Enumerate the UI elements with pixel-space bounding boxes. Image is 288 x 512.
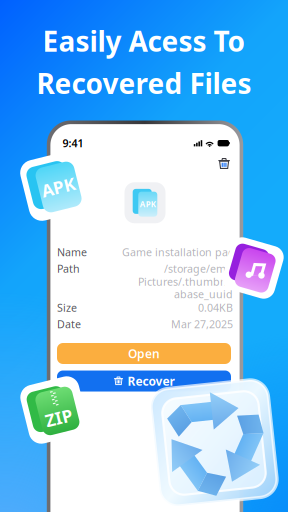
staticText: Pictures/.thumbna [138,274,233,289]
staticText: Recover [127,373,174,389]
staticText: 0.04KB [198,300,233,315]
button[interactable]: Delete [215,154,234,173]
staticText: Game installation pac [122,245,233,259]
staticText: Recovered Files [36,64,251,102]
staticText: Date [57,317,81,331]
staticText: abase_uuid [174,287,233,301]
staticText: Easily Acess To [42,22,245,59]
staticText: ZIP [43,407,71,430]
staticText: Name [57,245,87,259]
staticText: Open [128,345,160,361]
staticText: Path [57,261,80,276]
button[interactable]: Open [57,343,231,364]
staticText: Mar 27,2025 [171,317,233,331]
staticText: APK [41,176,76,199]
staticText: 9:41 [62,136,83,150]
staticText: Size [57,300,77,315]
button[interactable]: Recover [57,370,231,391]
staticText: APK [140,199,156,209]
staticText: /storage/emu [164,261,233,276]
